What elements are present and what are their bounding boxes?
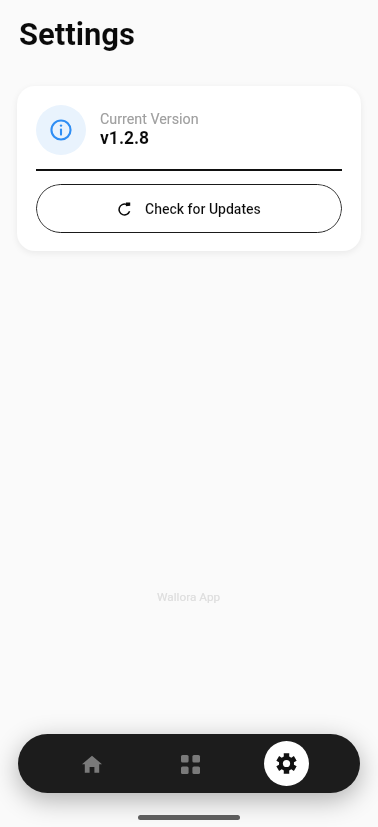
staticText: Current Version — [100, 111, 199, 128]
staticText: Check for Updates — [145, 201, 261, 217]
staticText: v1.2.8 — [100, 128, 150, 149]
staticText: Wallora App — [157, 590, 221, 604]
button[interactable]: Check for Updates — [36, 184, 342, 233]
button[interactable]: Categories — [167, 741, 213, 787]
button[interactable]: Home — [69, 741, 115, 787]
button[interactable]: Settings — [264, 741, 309, 786]
staticText: Settings — [19, 16, 136, 52]
